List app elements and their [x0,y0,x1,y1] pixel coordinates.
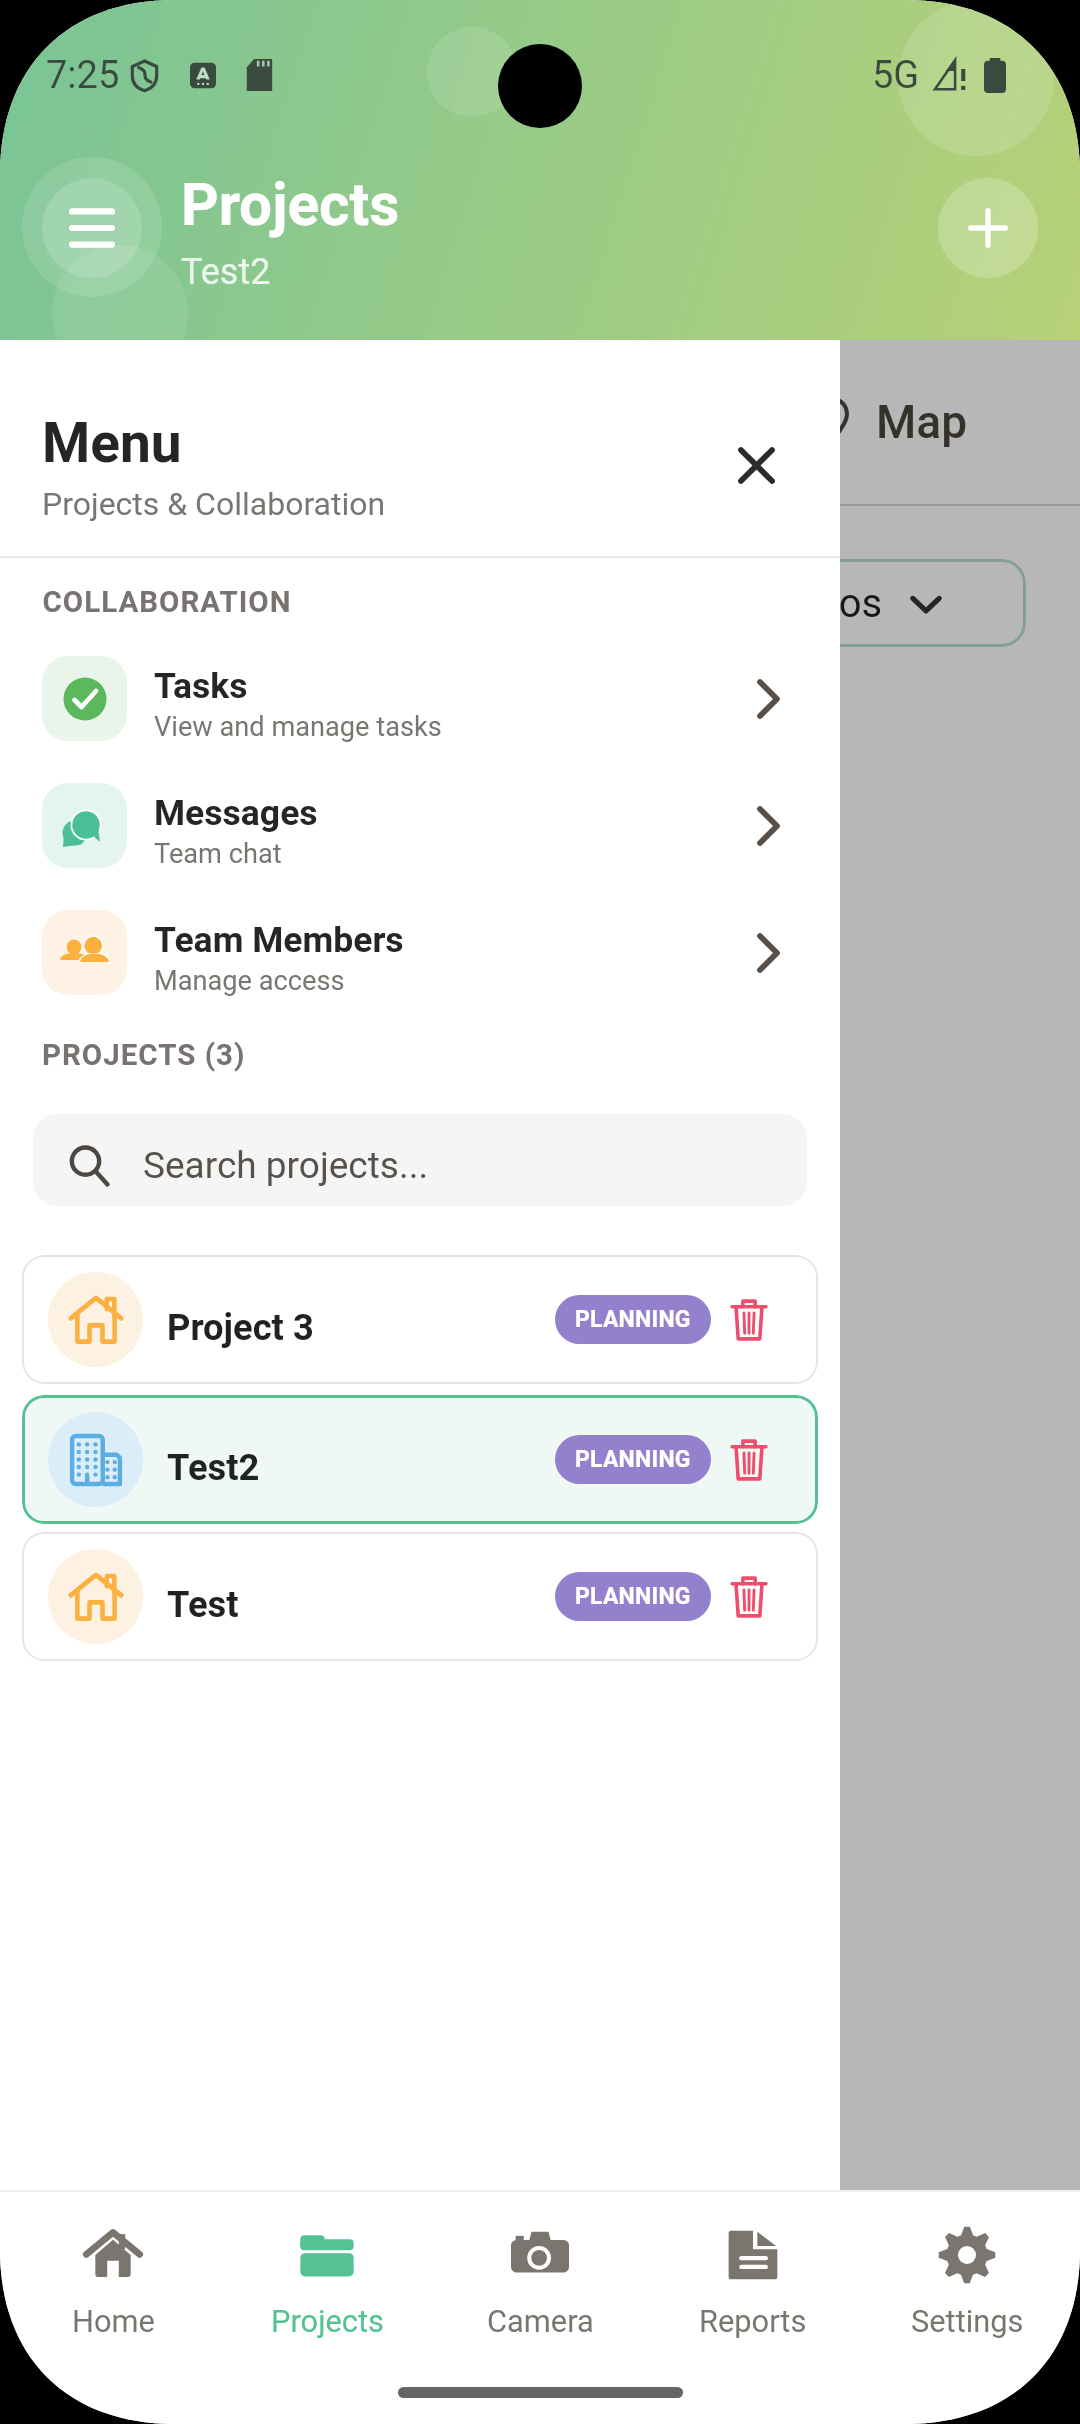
button[interactable]: Camera [440,2226,640,2339]
button[interactable]: Projects [227,2226,427,2339]
staticText: View and manage tasks [154,711,442,743]
staticText: Menu [42,411,182,475]
staticText: Settings [911,2303,1024,2339]
button[interactable]: Close menu [716,425,796,505]
button[interactable]: Tasks [0,635,840,762]
staticText: Project 3 [167,1306,555,1349]
staticText: Manage access [154,965,345,997]
button[interactable]: Test2 [22,1395,818,1524]
button[interactable]: Messages [0,762,840,889]
button[interactable]: Reports [653,2226,853,2339]
staticText: Test2 [181,251,271,293]
staticText: Photos [756,580,883,627]
staticText: 5G [872,53,920,98]
staticText: Team Members [154,919,404,961]
button[interactable]: Delete Test [719,1567,779,1627]
staticText: PLANNING [575,1583,691,1610]
staticText: Team chat [154,838,282,870]
staticText: COLLABORATION [42,585,291,620]
staticText: Search projects... [143,1144,429,1187]
button[interactable]: Open navigation menu [42,178,142,278]
staticText: Home [72,2303,155,2339]
staticText: Map [876,395,968,449]
button[interactable]: Team Members [0,889,840,1016]
button[interactable]: Home [13,2226,213,2339]
staticText: Tasks [154,665,248,707]
staticText: Projects [271,2303,384,2339]
button[interactable]: Test [22,1532,818,1661]
button[interactable]: Add project [938,178,1038,278]
staticText: Camera [487,2303,594,2339]
staticText: Test2 [167,1446,555,1489]
staticText: Projects [181,171,400,240]
button[interactable]: Search projects... [33,1114,807,1206]
staticText: Test [167,1583,555,1626]
button[interactable]: Settings [867,2226,1067,2339]
staticText: 7:25 [46,53,120,98]
staticText: PLANNING [575,1306,691,1333]
staticText: Projects & Collaboration [42,485,386,523]
button[interactable]: Delete Test2 [719,1430,779,1490]
button[interactable]: Project 3 [22,1255,818,1384]
staticText: Messages [154,792,318,834]
staticText: PROJECTS (3) [42,1038,246,1073]
button[interactable]: Delete Project 3 [719,1290,779,1350]
staticText: PLANNING [575,1446,691,1473]
staticText: Reports [699,2303,807,2339]
